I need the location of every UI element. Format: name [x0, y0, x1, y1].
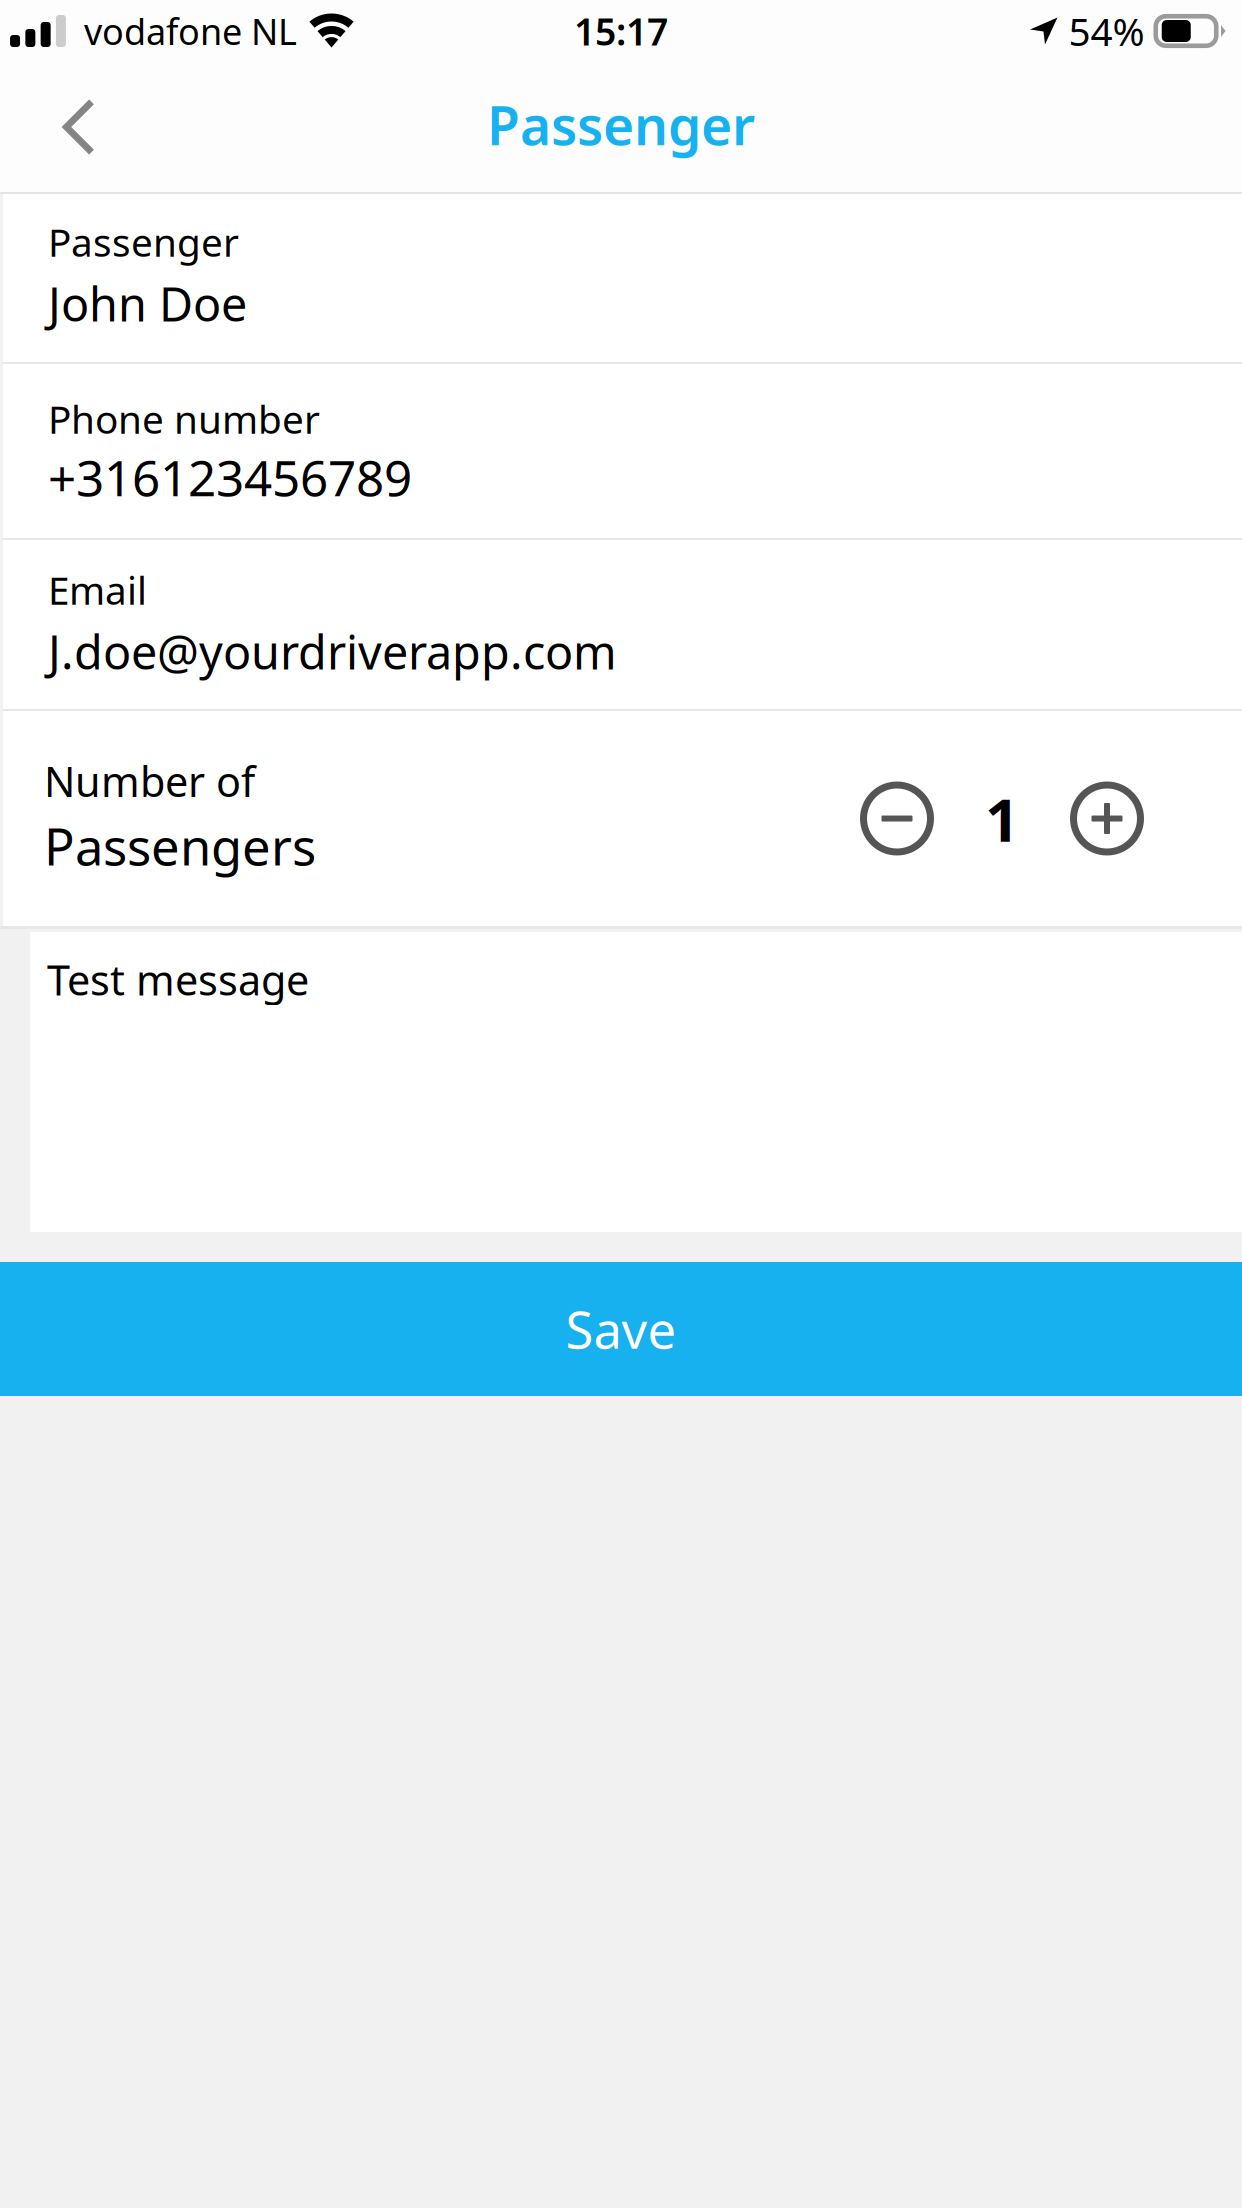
- button[interactable]: Passenger: [3, 194, 1242, 362]
- button[interactable]: Phone number: [3, 364, 1242, 538]
- staticText: Passenger: [48, 216, 239, 267]
- staticText: Passenger: [487, 89, 755, 160]
- button[interactable]: Test message: [30, 932, 1242, 1232]
- button[interactable]: Increase number of passengers: [1059, 770, 1155, 866]
- staticText: Email: [48, 564, 147, 615]
- button[interactable]: Decrease number of passengers: [849, 770, 945, 866]
- staticText: J.doe@yourdriverapp.com: [48, 620, 617, 682]
- staticText: Save: [565, 1295, 676, 1363]
- button[interactable]: Save: [0, 1262, 1242, 1396]
- staticText: 1: [985, 779, 1019, 858]
- staticText: 54%: [1068, 5, 1144, 57]
- staticText: Phone number: [48, 393, 320, 444]
- staticText: +316123456789: [48, 444, 412, 510]
- staticText: Passengers: [44, 812, 316, 880]
- staticText: 15:17: [574, 6, 668, 56]
- staticText: vodafone NL: [84, 7, 297, 55]
- staticText: Number of: [44, 753, 255, 808]
- staticText: John Doe: [48, 272, 247, 334]
- button[interactable]: Back: [31, 75, 127, 179]
- button[interactable]: Email: [3, 540, 1242, 709]
- staticText: Test message: [47, 952, 309, 1007]
